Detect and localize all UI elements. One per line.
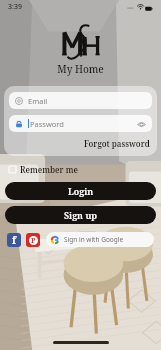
staticText: Email (28, 96, 48, 106)
button[interactable]: Sign in with Pinterest (26, 233, 40, 247)
staticText: My Home (0, 62, 161, 76)
staticText: Password (30, 119, 64, 129)
button[interactable]: Sign in with Facebook (7, 233, 21, 247)
staticText: Login (68, 185, 94, 197)
button[interactable]: Remember me (7, 162, 80, 177)
staticText: 3:39 (8, 2, 22, 12)
staticText: f (12, 233, 17, 247)
staticText: Remember me (20, 164, 78, 175)
staticText: Sign in with Google (64, 235, 124, 244)
button[interactable]: Password (9, 115, 152, 132)
button[interactable]: Sign up (5, 206, 156, 224)
staticText: Sign up (64, 209, 97, 221)
button[interactable]: Login (5, 182, 156, 200)
button[interactable]: Email (9, 92, 152, 109)
button[interactable]: Forgot password (82, 137, 152, 150)
staticText: P (31, 236, 36, 245)
button[interactable]: Show password (136, 119, 146, 129)
button[interactable]: Sign in with Google (46, 232, 154, 247)
